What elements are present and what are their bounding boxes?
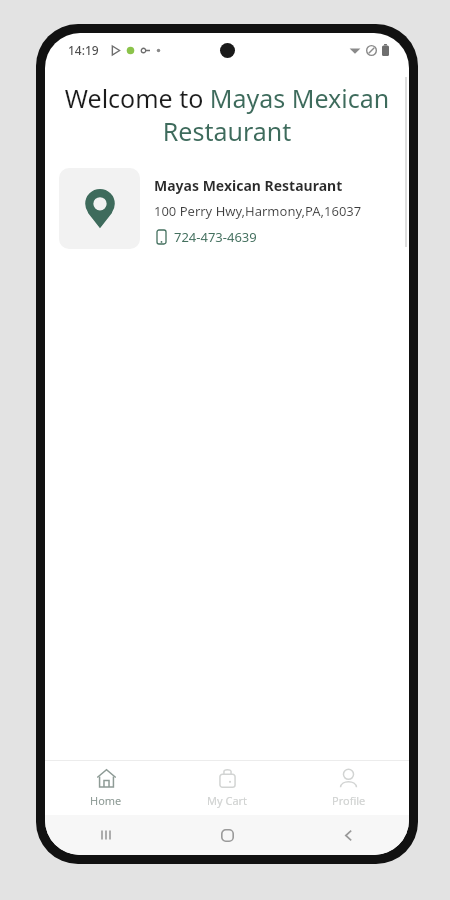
button[interactable]: Back bbox=[288, 828, 409, 843]
staticText: 724-473-4639 bbox=[174, 228, 257, 246]
button[interactable]: My Cart bbox=[167, 762, 288, 814]
button[interactable]: Profile bbox=[288, 762, 409, 814]
staticText: Welcome to Mayas Mexican Restaurant bbox=[61, 81, 393, 148]
button[interactable]: Mayas Mexican Restaurant bbox=[45, 162, 409, 257]
staticText: 100 Perry Hwy,Harmony,PA,16037 bbox=[154, 202, 362, 220]
staticText: Profile bbox=[332, 793, 366, 808]
button[interactable]: Home bbox=[45, 762, 167, 814]
staticText: Mayas Mexican Restaurant bbox=[154, 176, 343, 195]
staticText: Home bbox=[90, 793, 122, 808]
button[interactable]: Recent apps bbox=[45, 827, 167, 843]
staticText: 14:19 bbox=[68, 42, 99, 58]
staticText: My Cart bbox=[207, 793, 248, 808]
button[interactable]: Home bbox=[167, 828, 288, 843]
